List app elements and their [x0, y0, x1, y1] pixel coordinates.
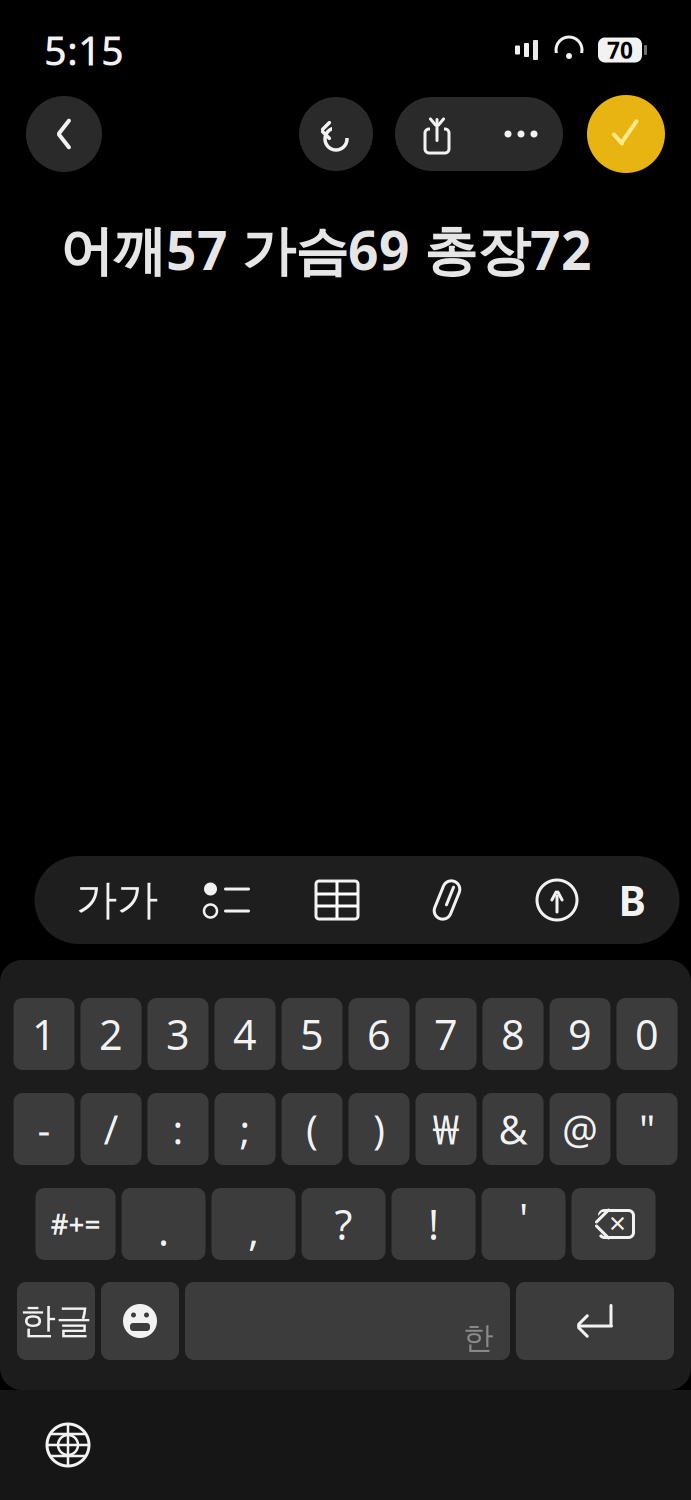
button[interactable]: , — [211, 1188, 295, 1260]
button[interactable]: Return — [516, 1282, 674, 1360]
staticText: 가가 — [76, 875, 158, 925]
staticText: 한글 — [20, 1299, 92, 1343]
button[interactable]: More — [479, 97, 563, 171]
button[interactable]: 9 — [549, 998, 610, 1070]
staticText: . — [158, 1203, 169, 1257]
button[interactable]: Bold — [612, 856, 652, 944]
button[interactable]: . — [121, 1188, 205, 1260]
button[interactable]: Emoji — [101, 1282, 179, 1360]
button[interactable]: Switch keyboard — [30, 1407, 106, 1483]
button[interactable]: Undo — [299, 97, 373, 171]
staticText: - — [37, 1102, 50, 1155]
staticText: 8 — [501, 1007, 525, 1061]
button[interactable]: 6 — [348, 998, 409, 1070]
staticText: , — [248, 1203, 259, 1257]
button[interactable]: Attach — [392, 856, 502, 944]
button[interactable]: 한글 — [17, 1282, 95, 1360]
staticText: ? — [334, 1197, 352, 1251]
staticText: 9 — [568, 1007, 592, 1061]
button[interactable]: Space — [185, 1282, 510, 1360]
button[interactable]: - — [13, 1093, 74, 1165]
button[interactable]: ) — [348, 1093, 409, 1165]
staticText: ; — [239, 1102, 250, 1155]
staticText: 5 — [300, 1007, 324, 1061]
staticText: 한 — [463, 1319, 494, 1357]
staticText: ! — [428, 1197, 439, 1251]
button[interactable]: & — [482, 1093, 543, 1165]
staticText: 0 — [635, 1007, 659, 1061]
button[interactable]: ? — [301, 1188, 385, 1260]
button[interactable]: ₩ — [415, 1093, 476, 1165]
staticText: 6 — [367, 1007, 391, 1061]
button[interactable]: Table — [282, 856, 392, 944]
staticText: & — [498, 1102, 527, 1155]
button[interactable]: ' — [481, 1188, 565, 1260]
button[interactable]: 0 — [616, 998, 677, 1070]
button[interactable]: " — [616, 1093, 677, 1165]
button[interactable]: Done — [587, 95, 665, 173]
button[interactable]: / — [80, 1093, 141, 1165]
staticText: ) — [373, 1102, 385, 1155]
staticText: 어깨57 가슴69 총장72 — [60, 214, 592, 285]
staticText: B — [618, 873, 645, 927]
button[interactable]: Back — [26, 96, 102, 172]
button[interactable]: ! — [391, 1188, 475, 1260]
button[interactable]: ; — [214, 1093, 275, 1165]
staticText: " — [639, 1102, 655, 1155]
button[interactable]: 3 — [147, 998, 208, 1070]
staticText: 70 — [607, 35, 633, 65]
button[interactable]: Delete — [571, 1188, 655, 1260]
button[interactable]: 7 — [415, 998, 476, 1070]
button[interactable]: : — [147, 1093, 208, 1165]
button[interactable]: @ — [549, 1093, 610, 1165]
button[interactable]: Markup — [502, 856, 612, 944]
staticText: ' — [519, 1191, 528, 1245]
button[interactable]: 2 — [80, 998, 141, 1070]
staticText: ₩ — [432, 1102, 459, 1155]
staticText: @ — [562, 1102, 598, 1155]
button[interactable]: #+= — [35, 1188, 115, 1260]
button[interactable]: 5 — [281, 998, 342, 1070]
button[interactable]: 가가 — [62, 856, 172, 944]
staticText: / — [103, 1102, 118, 1155]
staticText: : — [172, 1102, 183, 1155]
staticText: 2 — [99, 1007, 123, 1061]
button[interactable]: 1 — [13, 998, 74, 1070]
staticText: ✕ — [608, 1211, 627, 1237]
staticText: 4 — [233, 1007, 257, 1061]
button[interactable]: Share — [395, 97, 479, 171]
staticText: 7 — [434, 1007, 458, 1061]
staticText: 1 — [32, 1007, 56, 1061]
staticText: 3 — [166, 1007, 190, 1061]
staticText: #+= — [50, 1205, 100, 1243]
button[interactable]: Checklist — [172, 856, 282, 944]
button[interactable]: ( — [281, 1093, 342, 1165]
staticText: 5:15 — [44, 23, 124, 76]
button[interactable]: 4 — [214, 998, 275, 1070]
staticText: ( — [306, 1102, 318, 1155]
button[interactable]: 8 — [482, 998, 543, 1070]
